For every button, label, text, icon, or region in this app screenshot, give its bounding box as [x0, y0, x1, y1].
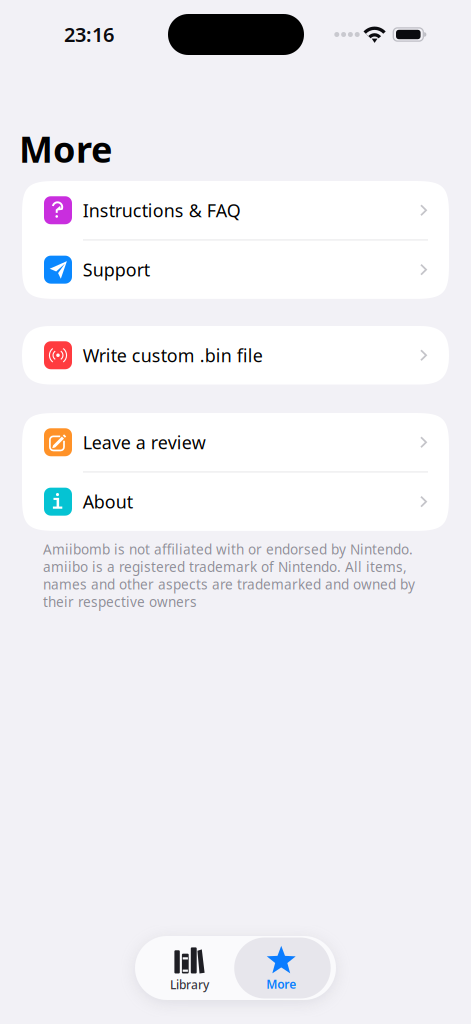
staticText: Leave a review [83, 430, 206, 454]
button[interactable]: Instructions & FAQ [22, 181, 449, 239]
staticText: Library [170, 977, 209, 993]
button[interactable]: About [22, 472, 449, 531]
button[interactable]: Library [140, 938, 239, 1002]
button[interactable]: Leave a review [22, 413, 449, 471]
staticText: Support [83, 257, 150, 282]
staticText: Write custom .bin file [83, 343, 263, 367]
button[interactable]: More [233, 939, 329, 1000]
staticText: More [266, 976, 296, 992]
staticText: 23:16 [64, 21, 114, 48]
staticText: Instructions & FAQ [83, 198, 241, 222]
staticText: More [19, 125, 112, 173]
staticText: Amiibomb is not affiliated with or endor… [43, 540, 415, 611]
button[interactable]: Support [22, 240, 449, 299]
staticText: About [83, 489, 133, 514]
button[interactable]: Write custom .bin file [22, 326, 449, 384]
